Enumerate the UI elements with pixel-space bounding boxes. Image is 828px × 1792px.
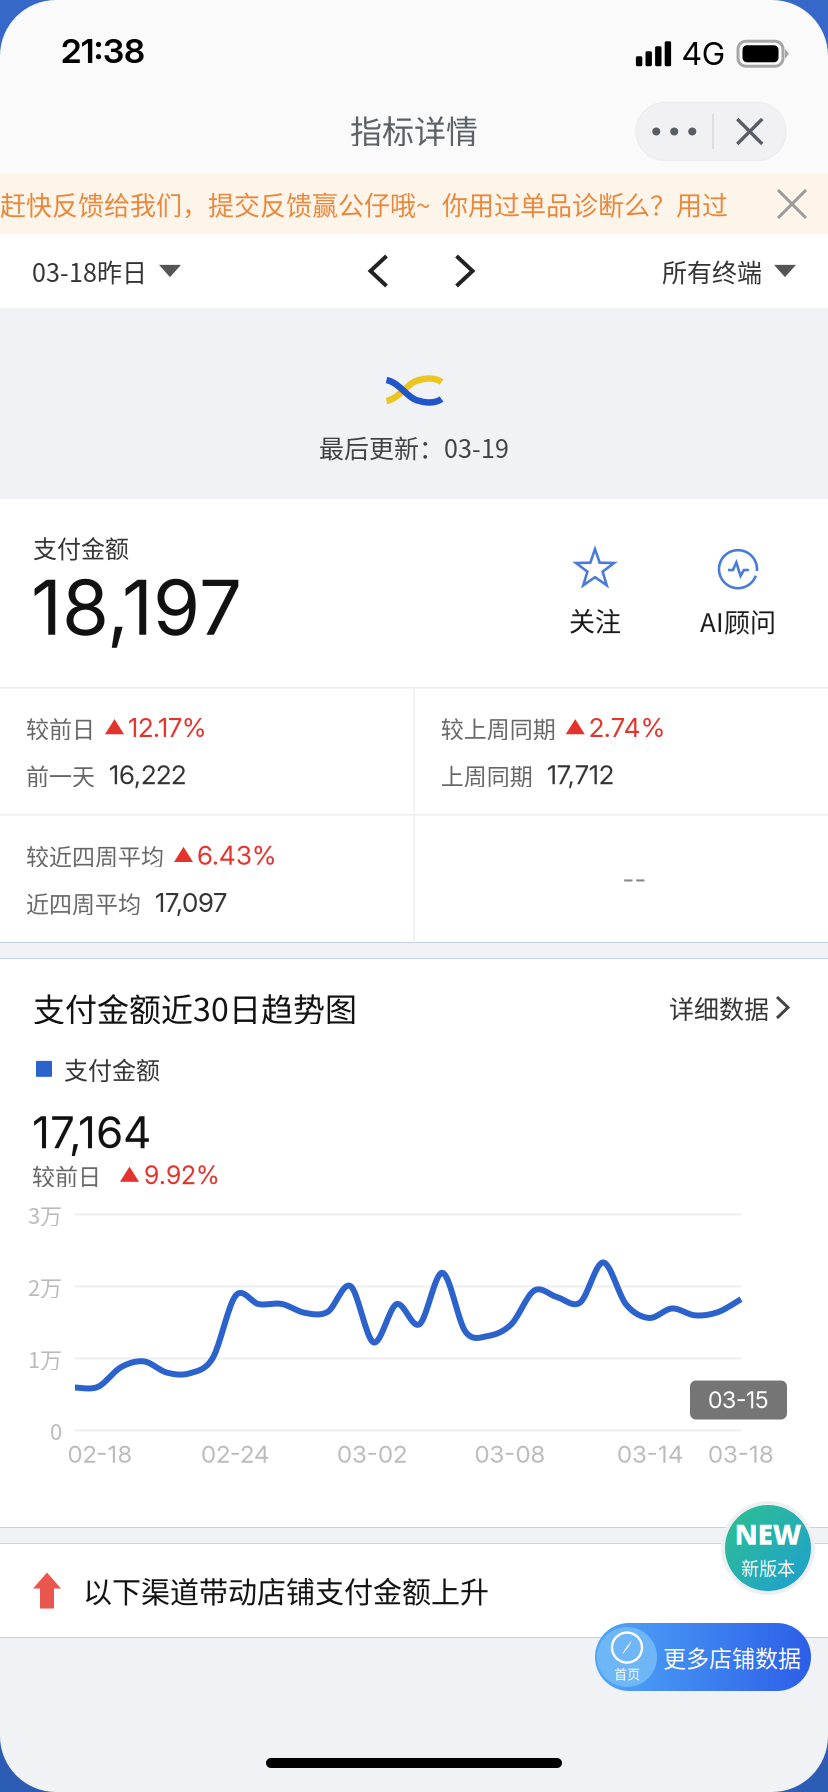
button[interactable]: More and close xyxy=(636,102,786,160)
staticText: 0 xyxy=(50,1415,62,1446)
staticText: 更多店铺数据 xyxy=(663,1640,801,1674)
staticText: 上周同期 xyxy=(441,758,533,791)
button[interactable]: Dismiss banner xyxy=(764,174,820,234)
staticText: 前一天 xyxy=(26,758,95,791)
staticText: 6.43% xyxy=(197,840,276,871)
staticText: -- xyxy=(622,863,646,895)
staticText: 9.92% xyxy=(144,1160,220,1190)
staticText: 较前日 xyxy=(32,1158,101,1192)
staticText: 指标详情 xyxy=(350,106,478,153)
staticText: 2万 xyxy=(28,1271,62,1302)
staticText: 较近四周平均 xyxy=(26,839,164,872)
staticText: 新版本 xyxy=(741,1555,795,1581)
staticText: 17,164 xyxy=(32,1105,151,1159)
button[interactable]: AI顾问 xyxy=(660,544,816,644)
button[interactable]: 详细数据 xyxy=(659,978,798,1036)
button[interactable]: 所有终端 xyxy=(630,234,828,308)
button[interactable]: 首页 xyxy=(595,1623,811,1691)
button[interactable]: Previous day xyxy=(346,234,410,308)
staticText: 关注 xyxy=(569,601,621,639)
staticText: 03-18昨日 xyxy=(32,253,147,289)
staticText: 03-15 xyxy=(708,1386,769,1414)
button[interactable]: 03-18昨日 xyxy=(0,234,213,308)
staticText: 支付金额 xyxy=(64,1051,160,1086)
staticText: 02-24 xyxy=(201,1439,269,1468)
staticText: 18,197 xyxy=(31,561,242,653)
staticText: 首页 xyxy=(614,1664,640,1682)
staticText: 03-14 xyxy=(617,1439,683,1468)
staticText: 较上周同期 xyxy=(441,711,556,744)
staticText: NEW xyxy=(734,1515,801,1553)
staticText: 21:38 xyxy=(61,30,145,71)
staticText: 17,097 xyxy=(155,887,227,918)
staticText: 3万 xyxy=(28,1199,62,1230)
button[interactable]: 关注 xyxy=(530,544,660,644)
staticText: 02-18 xyxy=(67,1439,132,1468)
staticText: 详细数据 xyxy=(669,989,769,1026)
staticText: 4G xyxy=(682,35,725,72)
staticText: 03-02 xyxy=(337,1439,407,1468)
staticText: 近四周平均 xyxy=(26,886,141,919)
staticText: 1万 xyxy=(28,1343,62,1374)
button[interactable]: New version xyxy=(721,1501,815,1595)
staticText: 16,222 xyxy=(109,759,186,791)
staticText: 03-18 xyxy=(708,1439,774,1468)
staticText: 03-08 xyxy=(474,1439,545,1468)
staticText: 2.74% xyxy=(589,712,665,743)
staticText: 较前日 xyxy=(26,711,95,744)
staticText: 12.17% xyxy=(128,712,206,743)
staticText: 以下渠道带动店铺支付金额上升 xyxy=(83,1569,489,1611)
staticText: AI顾问 xyxy=(700,602,776,640)
staticText: 支付金额 xyxy=(33,530,129,565)
staticText: 赶快反馈给我们，提交反馈赢公仔哦~ 你用过单品诊断么？用过 xyxy=(0,185,728,223)
staticText: 17,712 xyxy=(547,759,614,791)
button[interactable]: Next day xyxy=(432,234,496,308)
staticText: 所有终端 xyxy=(662,253,762,289)
staticText: 最后更新：03-19 xyxy=(319,429,509,465)
staticText: 支付金额近30日趋势图 xyxy=(33,984,357,1031)
